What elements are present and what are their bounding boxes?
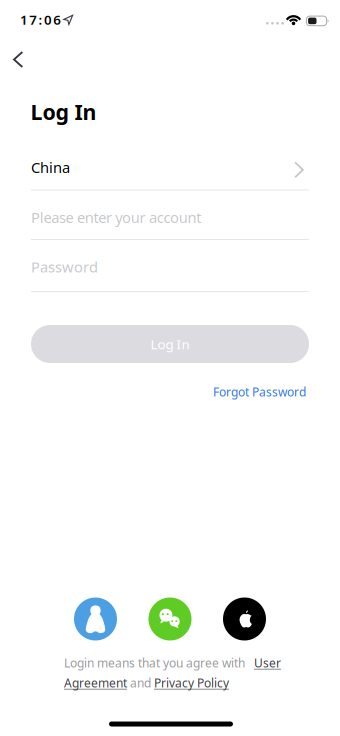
button[interactable]: Password: [31, 256, 309, 293]
button[interactable]: Please enter your account: [31, 207, 309, 241]
staticText: Log In: [30, 97, 96, 126]
staticText: Privacy Policy: [154, 675, 229, 691]
staticText: Please enter your account: [31, 207, 201, 227]
button[interactable]: Log in with Apple: [223, 597, 266, 640]
button[interactable]: Forgot Password: [213, 384, 306, 400]
staticText: Login means that you agree with: [64, 655, 245, 671]
staticText: China: [31, 158, 70, 177]
button[interactable]: Back: [0, 45, 35, 74]
staticText: Agreement: [64, 675, 127, 691]
button[interactable]: User: [245, 655, 281, 671]
button[interactable]: Log in with QQ: [74, 597, 117, 640]
staticText: User: [254, 655, 281, 671]
staticText: Log In: [150, 335, 189, 353]
staticText: Password: [31, 257, 98, 276]
button[interactable]: China: [31, 155, 309, 191]
staticText: and: [127, 675, 154, 691]
button[interactable]: Privacy Policy: [154, 675, 229, 691]
staticText: Forgot Password: [213, 384, 306, 400]
staticText: 17:06: [20, 11, 61, 28]
button[interactable]: Log In: [31, 325, 309, 363]
button[interactable]: Agreement: [64, 675, 127, 691]
button[interactable]: Log in with WeChat: [148, 597, 191, 640]
